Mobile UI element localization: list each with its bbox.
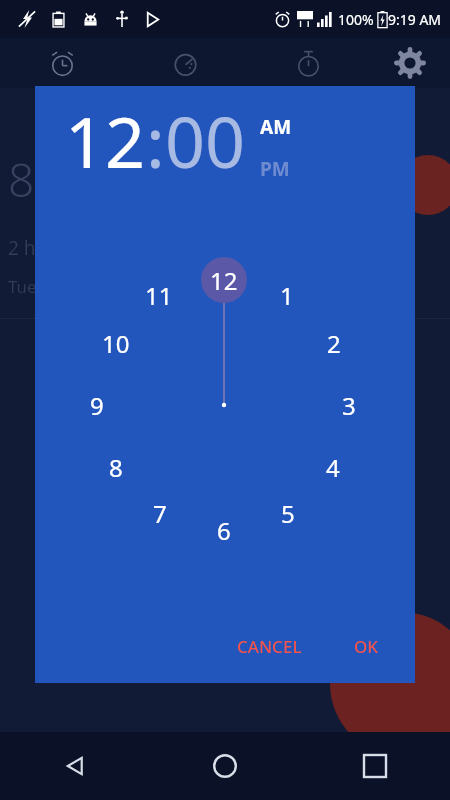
button[interactable]: 5 [267,492,309,534]
button[interactable]: Stopwatch [247,38,370,88]
staticText: Tue [8,275,37,298]
button[interactable]: 7 [139,492,181,534]
staticText: 100% [338,10,374,29]
button[interactable]: Back [0,732,150,800]
button[interactable]: 6 [203,509,245,551]
staticText: 12 [65,93,146,188]
button[interactable]: Home [150,732,300,800]
staticText: CANCEL [237,635,302,658]
staticText: 8:00 [8,148,99,211]
staticText: 2 h [8,235,36,261]
button[interactable]: OK [344,627,389,666]
staticText: 6 [217,514,231,547]
button[interactable]: 00 [165,93,246,188]
staticText: 9:19 AM [388,10,442,29]
button[interactable]: 10 [95,322,137,364]
staticText: 00 [165,93,246,188]
button[interactable]: CANCEL [227,627,312,666]
button[interactable]: 11 [138,274,180,316]
staticText: 9 [90,389,104,422]
staticText: 5 [281,497,295,530]
staticText: 4 [326,451,340,484]
button[interactable]: Settings [370,38,450,88]
button[interactable]: 1 [266,274,308,316]
button[interactable]: 2 [313,322,355,364]
staticText: : [146,93,165,188]
button[interactable]: 12 [203,259,245,301]
staticText: 12 [210,264,238,297]
staticText: 8 [109,451,123,484]
button[interactable]: Recents [300,732,450,800]
staticText: 11 [145,279,173,312]
button[interactable]: 9 [76,384,118,426]
staticText: 1 [280,279,294,312]
staticText: OK [354,635,379,658]
button[interactable]: 3 [328,384,370,426]
button[interactable]: 12 [65,93,146,188]
button[interactable]: 8 [95,446,137,488]
button[interactable]: Alarm [0,38,124,88]
staticText: PM [260,156,290,182]
button[interactable]: Timer [124,38,247,88]
staticText: 10 [102,327,130,360]
staticText: AM [260,114,292,140]
button[interactable]: 4 [312,446,354,488]
staticText: 3 [342,389,356,422]
button[interactable]: AM [260,114,292,140]
staticText: 2 [327,327,341,360]
button[interactable]: PM [260,156,290,182]
staticText: 7 [153,497,167,530]
